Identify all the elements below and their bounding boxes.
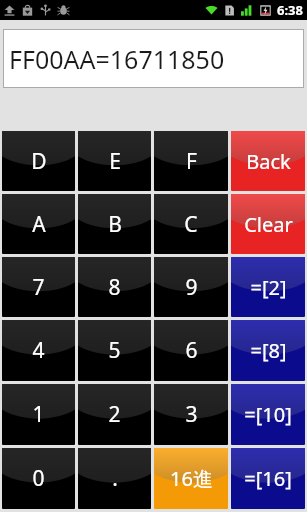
staticText: 2: [108, 400, 121, 429]
button[interactable]: 0: [2, 448, 75, 509]
staticText: 5: [108, 336, 121, 365]
button[interactable]: =[10]: [231, 384, 305, 445]
staticText: B: [108, 210, 122, 239]
button[interactable]: 3: [154, 384, 228, 445]
staticText: A: [32, 210, 46, 239]
staticText: Clear: [244, 211, 293, 238]
other: USB connected: [39, 4, 52, 17]
staticText: Back: [246, 148, 291, 175]
button[interactable]: 5: [78, 320, 151, 381]
button[interactable]: 4: [2, 320, 75, 381]
staticText: 6:38: [277, 1, 303, 19]
staticText: 16進: [170, 465, 213, 492]
staticText: 7: [32, 273, 45, 302]
button[interactable]: 16進: [154, 448, 228, 509]
button[interactable]: Clear: [231, 194, 305, 254]
button[interactable]: .: [78, 448, 151, 509]
staticText: =[16]: [244, 465, 292, 492]
staticText: 0: [32, 464, 45, 493]
button[interactable]: 6: [154, 320, 228, 381]
button[interactable]: C: [154, 194, 228, 254]
staticText: 1: [32, 400, 45, 429]
button[interactable]: Back: [231, 131, 305, 191]
other: Upload: [3, 4, 16, 17]
staticText: 9: [185, 273, 198, 302]
staticText: E: [109, 147, 121, 176]
other: SIM card: [223, 4, 236, 17]
button[interactable]: =[2]: [231, 257, 305, 317]
button[interactable]: 1: [2, 384, 75, 445]
button[interactable]: FF00AA=16711850: [3, 29, 304, 88]
staticText: D: [31, 147, 47, 176]
other: Battery charging: [259, 4, 272, 17]
button[interactable]: E: [78, 131, 151, 191]
staticText: 6: [185, 336, 198, 365]
staticText: FF00AA=16711850: [9, 42, 225, 76]
staticText: 3: [185, 400, 198, 429]
staticText: F: [186, 147, 197, 176]
staticText: 4: [32, 336, 45, 365]
button[interactable]: D: [2, 131, 75, 191]
staticText: C: [184, 210, 198, 239]
other: USB debugging: [57, 4, 70, 17]
button[interactable]: 7: [2, 257, 75, 317]
button[interactable]: 9: [154, 257, 228, 317]
staticText: 8: [108, 273, 121, 302]
button[interactable]: A: [2, 194, 75, 254]
button[interactable]: 2: [78, 384, 151, 445]
staticText: =[2]: [250, 274, 287, 301]
button[interactable]: F: [154, 131, 228, 191]
button[interactable]: =[16]: [231, 448, 305, 509]
other: Wi-Fi: [205, 4, 218, 17]
staticText: =[8]: [250, 337, 287, 364]
button[interactable]: B: [78, 194, 151, 254]
button[interactable]: 8: [78, 257, 151, 317]
staticText: =[10]: [244, 401, 292, 428]
button[interactable]: =[8]: [231, 320, 305, 381]
staticText: .: [112, 464, 118, 493]
other: Downloading app: [21, 4, 34, 17]
other: Mobile signal: [241, 4, 254, 17]
